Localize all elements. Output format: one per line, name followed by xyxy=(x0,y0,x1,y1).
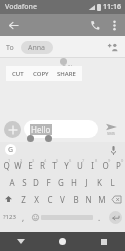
staticText: . xyxy=(98,212,101,223)
staticText: V xyxy=(60,194,65,205)
button[interactable]: K xyxy=(93,174,106,191)
button[interactable]: A xyxy=(6,174,18,191)
staticText: Anna xyxy=(28,43,46,53)
staticText: T xyxy=(52,160,57,171)
staticText: Hello xyxy=(31,124,51,135)
button[interactable]: M xyxy=(95,191,108,208)
staticText: SMS xyxy=(107,131,116,136)
staticText: L xyxy=(110,177,115,188)
staticText: COPY xyxy=(33,70,49,78)
staticText: 3 xyxy=(32,158,35,163)
staticText: G xyxy=(58,177,64,188)
button[interactable]: , xyxy=(18,208,29,226)
staticText: E xyxy=(28,160,33,171)
staticText: 6 xyxy=(69,158,72,163)
staticText: X xyxy=(34,194,39,205)
button[interactable]: S xyxy=(18,174,30,191)
staticText: B xyxy=(73,194,79,205)
button[interactable]: Home xyxy=(41,232,83,251)
button[interactable]: N xyxy=(82,191,95,208)
staticText: CUT xyxy=(12,70,24,78)
staticText: R xyxy=(40,160,45,171)
button[interactable]: Add attachment xyxy=(4,121,21,138)
button[interactable]: Call xyxy=(85,15,105,35)
button[interactable]: . xyxy=(93,208,105,226)
button[interactable]: ?123 xyxy=(0,208,18,226)
button[interactable]: Backspace xyxy=(108,191,125,208)
staticText: F xyxy=(46,177,51,188)
button[interactable]: Google search xyxy=(5,144,16,155)
staticText: U xyxy=(77,160,83,171)
button[interactable]: Emoji xyxy=(29,208,41,226)
button[interactable]: Hello xyxy=(24,120,98,138)
button[interactable]: SHARE xyxy=(55,68,78,80)
button[interactable]: Send SMS xyxy=(101,119,121,139)
staticText: To xyxy=(6,43,14,53)
button[interactable]: Back xyxy=(0,232,41,251)
button[interactable]: B xyxy=(69,191,82,208)
button[interactable]: C xyxy=(43,191,56,208)
staticText: D xyxy=(33,177,39,188)
button[interactable]: H xyxy=(67,174,80,191)
button[interactable]: Shift xyxy=(0,191,17,208)
button[interactable]: More options xyxy=(105,16,123,34)
button[interactable]: CUT xyxy=(10,68,26,80)
button[interactable]: F xyxy=(42,174,54,191)
staticText: C xyxy=(47,194,53,205)
button[interactable]: Enter xyxy=(105,208,125,226)
staticText: J xyxy=(85,177,88,188)
button[interactable]: R xyxy=(36,157,48,174)
button[interactable]: L xyxy=(106,174,119,191)
staticText: 4 xyxy=(44,158,47,163)
button[interactable]: Y xyxy=(60,157,73,174)
button[interactable]: J xyxy=(80,174,93,191)
button[interactable]: X xyxy=(30,191,43,208)
button[interactable]: Voice input xyxy=(107,144,119,156)
button[interactable]: P xyxy=(112,157,125,174)
staticText: Now xyxy=(68,63,81,71)
staticText: M xyxy=(98,194,106,205)
button[interactable]: E xyxy=(24,157,36,174)
staticText: I xyxy=(91,160,94,171)
staticText: ?123 xyxy=(3,213,16,221)
staticText: O xyxy=(102,160,109,171)
button[interactable]: Recent apps xyxy=(83,232,125,251)
staticText: A xyxy=(9,177,15,188)
staticText: G xyxy=(8,145,14,155)
staticText: Y xyxy=(64,160,69,171)
staticText: S xyxy=(22,177,27,188)
button[interactable]: Back xyxy=(3,15,23,35)
button[interactable]: U xyxy=(73,157,86,174)
button[interactable]: D xyxy=(30,174,42,191)
button[interactable]: T xyxy=(48,157,60,174)
button[interactable]: O xyxy=(99,157,112,174)
button[interactable]: Q xyxy=(0,157,12,174)
staticText: N xyxy=(85,194,92,205)
button[interactable]: Z xyxy=(17,191,30,208)
staticText: 2 xyxy=(20,158,23,163)
staticText: W xyxy=(14,160,22,171)
staticText: 7 xyxy=(82,158,85,163)
staticText: P xyxy=(116,160,121,171)
staticText: , xyxy=(22,212,25,223)
staticText: 1 xyxy=(8,158,11,163)
staticText: 11:16 xyxy=(103,2,121,12)
button[interactable]: Anna xyxy=(21,41,53,54)
staticText: H xyxy=(71,177,77,188)
staticText: SHARE xyxy=(57,70,76,78)
button[interactable]: V xyxy=(56,191,69,208)
staticText: 0 xyxy=(121,158,124,163)
staticText: Vodafone xyxy=(5,2,37,12)
button[interactable]: W xyxy=(12,157,24,174)
staticText: Z xyxy=(21,194,26,205)
staticText: 9 xyxy=(108,158,111,163)
staticText: K xyxy=(97,177,102,188)
staticText: Q xyxy=(3,160,10,171)
button[interactable]: I xyxy=(86,157,99,174)
staticText: 8 xyxy=(95,158,98,163)
staticText: 5 xyxy=(56,158,59,163)
button[interactable]: COPY xyxy=(31,68,51,80)
button[interactable]: Add contact xyxy=(105,39,121,55)
button[interactable]: G xyxy=(54,174,67,191)
